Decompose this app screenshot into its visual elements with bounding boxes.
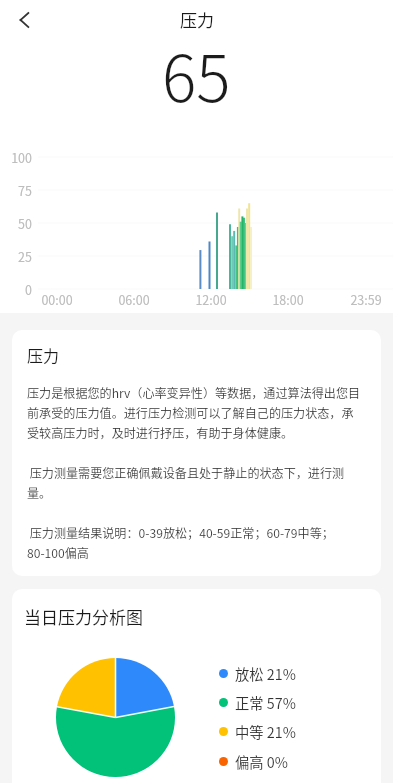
staticText: 压力 <box>180 7 214 32</box>
staticText: 06:00 <box>109 290 159 308</box>
staticText: 75 <box>0 181 32 199</box>
staticText: 偏高 0% <box>235 751 288 772</box>
staticText: 25 <box>0 247 32 265</box>
button[interactable]: 正常 57% <box>219 690 296 714</box>
staticText: 0 <box>0 280 32 298</box>
staticText: 100 <box>0 148 32 166</box>
button[interactable]: 偏高 0% <box>219 749 288 773</box>
staticText: 压力是根据您的hrv（心率变异性）等数据，通过算法得出您目 前承受的压力值。进行… <box>27 384 361 562</box>
staticText: 23:59 <box>341 290 391 308</box>
staticText: 12:00 <box>186 290 236 308</box>
button[interactable]: Back <box>6 2 42 38</box>
staticText: 65 <box>162 28 231 121</box>
staticText: 放松 21% <box>235 663 296 684</box>
staticText: 00:00 <box>32 290 82 308</box>
staticText: 当日压力分析图 <box>24 604 143 629</box>
staticText: 中等 21% <box>235 721 296 742</box>
staticText: 正常 57% <box>235 692 296 713</box>
button[interactable]: 放松 21% <box>219 661 296 685</box>
button[interactable]: 中等 21% <box>219 719 296 743</box>
staticText: 压力 <box>27 343 60 366</box>
staticText: 50 <box>0 214 32 232</box>
staticText: 18:00 <box>263 290 313 308</box>
